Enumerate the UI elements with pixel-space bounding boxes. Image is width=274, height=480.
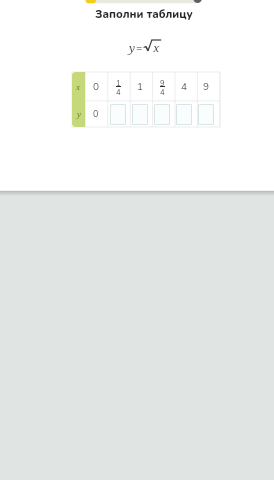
staticText: 4 [160, 87, 165, 97]
button[interactable]: Ввод значения [198, 104, 214, 125]
staticText: y [129, 40, 136, 56]
staticText: y [77, 109, 81, 119]
button[interactable]: Ввод значения [154, 104, 170, 125]
staticText: 9 [203, 80, 209, 94]
button[interactable]: Ввод значения [132, 104, 148, 125]
staticText: 1 [137, 80, 143, 94]
button[interactable]: Ввод значения [110, 104, 126, 125]
staticText: 4 [181, 80, 187, 94]
staticText: 1 [116, 78, 121, 88]
staticText: = [136, 40, 143, 56]
staticText: 0 [93, 108, 99, 120]
staticText: x [76, 82, 81, 92]
staticText: Заполни таблицу [23, 7, 265, 22]
button[interactable]: Ввод значения [176, 104, 192, 125]
staticText: 0 [93, 80, 99, 94]
staticText: 4 [116, 87, 121, 97]
staticText: 9 [160, 78, 165, 88]
staticText: x [153, 40, 160, 56]
